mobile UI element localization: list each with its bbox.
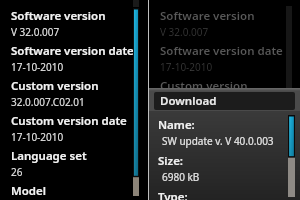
staticText: Size: xyxy=(158,153,184,169)
staticText: Software version xyxy=(160,8,255,24)
button[interactable]: Language set xyxy=(149,148,300,183)
staticText: Custom version date xyxy=(11,113,127,129)
button[interactable]: Download xyxy=(154,92,295,110)
staticText: 17-10-2010 xyxy=(11,130,64,144)
button[interactable]: Custom version xyxy=(0,78,148,113)
button[interactable]: Model xyxy=(149,183,300,200)
button[interactable]: Software version date xyxy=(149,43,300,78)
staticText: 17-10-2010 xyxy=(160,60,213,74)
button[interactable]: Software version xyxy=(149,8,300,43)
staticText: Software version xyxy=(11,8,106,24)
staticText: Language set xyxy=(160,148,236,164)
staticText: Custom version xyxy=(160,78,248,94)
staticText: 32.0.007.C02.01 xyxy=(160,95,234,109)
staticText: Download xyxy=(160,93,217,109)
staticText: Software version date xyxy=(160,43,283,59)
button[interactable]: Custom version date xyxy=(149,113,300,148)
staticText: Software version date xyxy=(11,43,134,59)
staticText: Custom version xyxy=(11,78,99,94)
staticText: V 32.0.007 xyxy=(160,25,209,39)
button[interactable]: Type: xyxy=(158,189,280,200)
button[interactable]: Custom version xyxy=(149,78,300,113)
staticText: Name: xyxy=(158,117,195,133)
staticText: 17-10-2010 xyxy=(11,60,64,74)
staticText: 32.0.007.C02.01 xyxy=(11,95,85,109)
button[interactable]: Software version date xyxy=(0,43,148,78)
staticText: Model xyxy=(11,183,46,199)
staticText: 26 xyxy=(11,165,23,179)
button[interactable]: Software version xyxy=(0,8,148,43)
staticText: Model xyxy=(160,183,195,199)
button[interactable]: Model xyxy=(0,183,148,200)
button[interactable]: Name: xyxy=(158,117,280,148)
button[interactable]: Language set xyxy=(0,148,148,183)
staticText: SW update v. V 40.0.003 xyxy=(162,134,274,148)
staticText: 6980 kB xyxy=(162,170,200,184)
staticText: Custom version date xyxy=(160,113,276,129)
staticText: 17-10-2010 xyxy=(160,130,213,144)
button[interactable]: Custom version date xyxy=(0,113,148,148)
staticText: Type: xyxy=(158,189,188,200)
staticText: 26 xyxy=(160,165,172,179)
staticText: Language set xyxy=(11,148,87,164)
button[interactable]: Size: xyxy=(158,153,280,184)
staticText: V 32.0.007 xyxy=(11,25,60,39)
